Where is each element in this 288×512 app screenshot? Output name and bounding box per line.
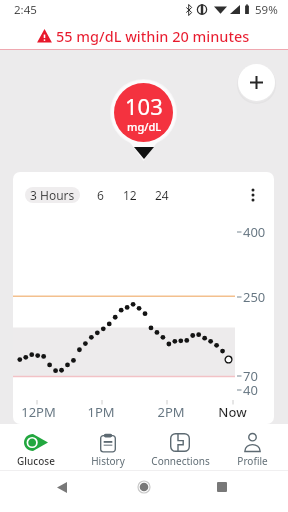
staticText: Profile	[237, 454, 268, 468]
staticText: 24	[155, 187, 169, 203]
staticText: 40	[243, 381, 258, 399]
button[interactable]: 6	[86, 187, 114, 203]
button[interactable]: 24	[148, 187, 176, 203]
button[interactable]: Profile	[216, 424, 288, 470]
button[interactable]: 12	[116, 187, 144, 203]
staticText: Glucose	[17, 454, 55, 468]
staticText: History	[91, 454, 125, 468]
staticText: 2:45	[14, 2, 37, 18]
button[interactable]: Back	[46, 471, 78, 503]
button[interactable]: Connections	[144, 424, 216, 470]
button[interactable]: 3 Hours	[25, 187, 80, 203]
staticText: 70	[243, 367, 258, 385]
staticText: 1PM	[87, 403, 115, 421]
staticText: 400	[243, 223, 266, 241]
staticText: Now	[218, 403, 247, 421]
button[interactable]: 55 mg/dL within 20 minutes	[0, 22, 288, 50]
button[interactable]: Glucose	[0, 424, 72, 470]
staticText: mg/dL	[127, 119, 162, 134]
button[interactable]: History	[72, 424, 144, 470]
staticText: 6	[97, 187, 104, 203]
staticText: 2PM	[157, 403, 185, 421]
staticText: Connections	[151, 454, 210, 468]
staticText: 250	[243, 288, 266, 306]
staticText: 3 Hours	[30, 187, 75, 203]
staticText: 59%	[255, 2, 278, 18]
staticText: 55 mg/dL within 20 minutes	[56, 26, 250, 46]
staticText: 103	[125, 91, 163, 121]
button[interactable]: Home	[128, 471, 160, 503]
button[interactable]: Add event	[238, 64, 275, 101]
button[interactable]: More options	[242, 184, 264, 206]
staticText: 12	[123, 187, 137, 203]
staticText: 12PM	[21, 403, 56, 421]
button[interactable]: Recents	[206, 471, 238, 503]
